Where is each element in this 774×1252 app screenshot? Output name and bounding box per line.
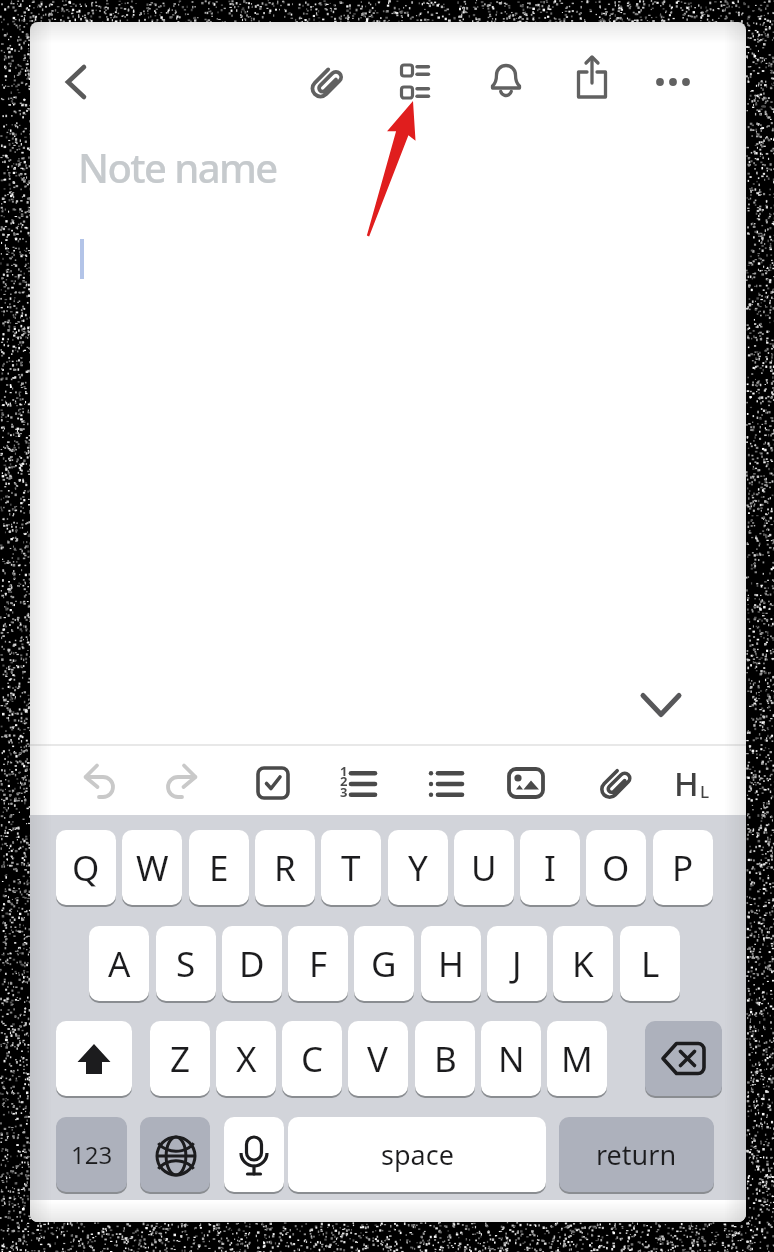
staticText: L: [641, 940, 660, 988]
staticText: V: [367, 1035, 389, 1083]
staticText: N: [498, 1035, 525, 1083]
button[interactable]: [645, 1021, 722, 1098]
staticText: space: [381, 1136, 454, 1173]
button[interactable]: [158, 759, 206, 807]
button[interactable]: space: [288, 1117, 546, 1194]
button[interactable]: J: [487, 926, 547, 1003]
button[interactable]: [56, 62, 96, 102]
button[interactable]: R: [255, 830, 315, 907]
button[interactable]: W: [122, 830, 182, 907]
staticText: O: [602, 844, 630, 892]
button[interactable]: [570, 60, 614, 104]
staticText: C: [301, 1035, 324, 1083]
button[interactable]: [421, 759, 469, 807]
staticText: H: [674, 761, 699, 806]
staticText: 1: [340, 762, 348, 780]
button[interactable]: D: [222, 926, 282, 1003]
button[interactable]: [393, 60, 437, 104]
button[interactable]: T: [321, 830, 381, 907]
staticText: E: [209, 844, 229, 892]
staticText: W: [136, 844, 169, 892]
staticText: Y: [408, 844, 428, 892]
button[interactable]: L: [620, 926, 680, 1003]
staticText: I: [544, 844, 556, 892]
button[interactable]: F: [288, 926, 348, 1003]
staticText: P: [672, 844, 694, 892]
button[interactable]: [637, 681, 685, 729]
staticText: X: [236, 1035, 257, 1083]
staticText: B: [434, 1035, 457, 1083]
staticText: G: [371, 940, 397, 988]
staticText: L: [700, 780, 710, 803]
button[interactable]: V: [348, 1021, 408, 1098]
button[interactable]: P: [653, 830, 713, 907]
button[interactable]: G: [354, 926, 414, 1003]
button[interactable]: S: [156, 926, 216, 1003]
button[interactable]: [484, 60, 528, 104]
staticText: U: [471, 844, 497, 892]
staticText: J: [512, 940, 522, 988]
button[interactable]: M: [547, 1021, 607, 1098]
button[interactable]: U: [454, 830, 514, 907]
button[interactable]: [592, 759, 640, 807]
button[interactable]: [224, 1117, 284, 1194]
button[interactable]: Z: [150, 1021, 210, 1098]
staticText: Q: [72, 844, 100, 892]
button[interactable]: [334, 759, 382, 807]
staticText: 3: [340, 783, 348, 801]
staticText: A: [108, 940, 131, 988]
staticText: H: [438, 940, 464, 988]
button[interactable]: 123: [56, 1117, 127, 1194]
button[interactable]: [75, 759, 123, 807]
button[interactable]: [249, 759, 297, 807]
staticText: Z: [170, 1035, 191, 1083]
button[interactable]: return: [559, 1117, 714, 1194]
button[interactable]: I: [520, 830, 580, 907]
staticText: T: [341, 844, 361, 892]
button[interactable]: Q: [56, 830, 116, 907]
button[interactable]: H: [421, 926, 481, 1003]
button[interactable]: B: [415, 1021, 475, 1098]
staticText: K: [572, 940, 594, 988]
button[interactable]: N: [481, 1021, 541, 1098]
button[interactable]: [651, 60, 695, 104]
button[interactable]: K: [553, 926, 613, 1003]
button[interactable]: [140, 1117, 210, 1194]
button[interactable]: [305, 60, 349, 104]
staticText: R: [274, 844, 296, 892]
button[interactable]: E: [189, 830, 249, 907]
button[interactable]: Y: [388, 830, 448, 907]
staticText: 2: [340, 772, 348, 790]
staticText: 123: [71, 1138, 113, 1171]
button[interactable]: [56, 1021, 132, 1098]
button[interactable]: O: [586, 830, 646, 907]
staticText: D: [239, 940, 265, 988]
staticText: Note name: [78, 140, 277, 194]
button[interactable]: A: [89, 926, 149, 1003]
staticText: return: [596, 1136, 677, 1173]
button[interactable]: H: [668, 759, 716, 807]
button[interactable]: [502, 759, 550, 807]
staticText: F: [309, 940, 328, 988]
staticText: S: [176, 940, 196, 988]
button[interactable]: X: [216, 1021, 276, 1098]
staticText: M: [561, 1035, 593, 1083]
button[interactable]: C: [282, 1021, 342, 1098]
